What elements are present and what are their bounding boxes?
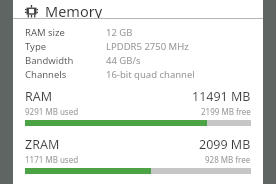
- button[interactable]: RAM: [13, 88, 263, 126]
- button[interactable]: Type: [13, 39, 263, 53]
- staticText: Bandwidth: [25, 54, 74, 67]
- staticText: LPDDR5 2750 MHz: [106, 40, 189, 53]
- staticText: 9291 MB used: [25, 106, 79, 117]
- staticText: 1171 MB used: [25, 154, 79, 165]
- staticText: 11491 MB: [192, 88, 251, 105]
- button[interactable]: Channels: [13, 67, 263, 81]
- staticText: 2199 MB free: [201, 106, 251, 117]
- staticText: Channels: [25, 68, 67, 81]
- other: Memory: [25, 5, 38, 18]
- staticText: Memory: [45, 1, 103, 18]
- staticText: 16-bit quad channel: [106, 68, 195, 81]
- button[interactable]: RAM size: [13, 25, 263, 39]
- staticText: 928 MB free: [205, 154, 251, 165]
- button[interactable]: Bandwidth: [13, 53, 263, 67]
- staticText: ZRAM: [25, 136, 60, 153]
- staticText: Type: [25, 40, 47, 53]
- button[interactable]: ZRAM: [13, 136, 263, 174]
- staticText: 44 GB/s: [106, 54, 141, 67]
- staticText: RAM size: [25, 26, 65, 39]
- staticText: 2099 MB: [199, 136, 251, 153]
- staticText: RAM: [25, 88, 53, 105]
- staticText: 12 GB: [106, 26, 133, 39]
- button[interactable]: Memory: [13, 0, 263, 18]
